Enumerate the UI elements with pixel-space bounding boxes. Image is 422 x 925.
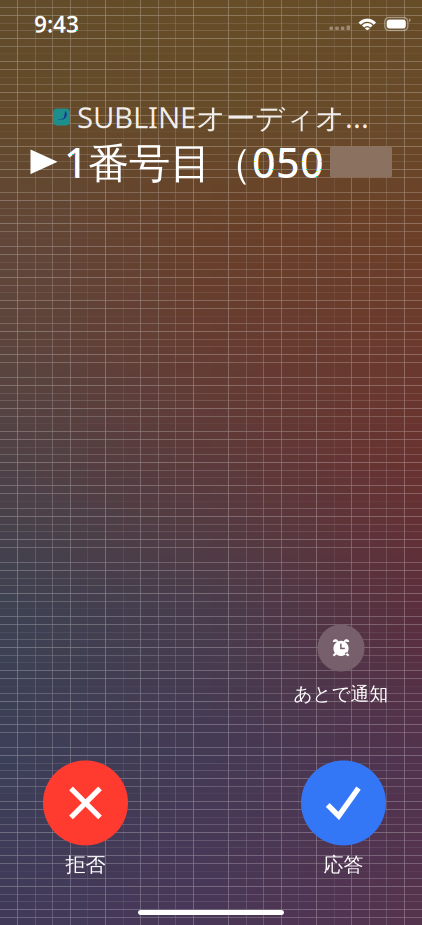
staticText: 応答 [323, 852, 363, 877]
staticText: 1番号目（050 [64, 135, 324, 189]
staticText: あとで通知 [293, 682, 388, 705]
staticText: 9:43 [34, 9, 79, 39]
button[interactable]: 拒否 [43, 760, 128, 877]
button[interactable]: 応答 [301, 760, 386, 877]
button[interactable]: あとで通知 [286, 624, 396, 705]
staticText: SUBLINEオーディオ... [77, 97, 369, 136]
staticText: 拒否 [65, 852, 105, 877]
